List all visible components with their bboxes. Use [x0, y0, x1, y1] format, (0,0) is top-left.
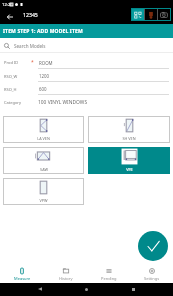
staticText: 12345	[23, 11, 38, 18]
staticText: Search Models	[14, 43, 46, 49]
button[interactable]: Back	[4, 11, 16, 23]
staticText: LA VEN	[37, 136, 50, 141]
staticText: RSO_W	[4, 74, 31, 79]
staticText: History	[59, 276, 73, 281]
button[interactable]: LA VEN	[3, 116, 84, 143]
button[interactable]: SH VEN	[88, 116, 170, 143]
staticText: ROOM	[39, 60, 53, 66]
button[interactable]: Alerts	[145, 9, 157, 20]
button[interactable]: Settings	[130, 266, 173, 283]
staticText: *	[31, 59, 34, 66]
button[interactable]: Measure	[0, 266, 44, 283]
staticText: VFE	[126, 167, 133, 172]
staticText: 1200	[39, 73, 50, 79]
button[interactable]: Camera	[158, 9, 170, 20]
button[interactable]: Back	[34, 283, 46, 295]
staticText: Settings	[144, 276, 160, 281]
staticText: ITEM STEP 1: ADD MODEL ITEM	[3, 28, 83, 35]
staticText: Prod ID	[4, 60, 31, 65]
button[interactable]: Recent apps	[127, 283, 139, 295]
staticText: Category	[4, 100, 38, 105]
staticText: SAW	[40, 167, 48, 172]
button[interactable]: History	[44, 266, 87, 283]
staticText: Pending	[101, 276, 117, 281]
staticText: 100 VINYL WINDOWS	[38, 99, 88, 106]
staticText: SH VEN	[122, 136, 136, 141]
staticText: VPW	[39, 198, 48, 203]
staticText: 12:26	[2, 2, 13, 8]
button[interactable]: Scan barcode	[132, 9, 144, 20]
button[interactable]: VFE	[88, 147, 170, 174]
staticText: 600	[39, 86, 47, 92]
button[interactable]: SAW	[3, 147, 84, 174]
button[interactable]: Confirm	[138, 231, 168, 261]
button[interactable]: Home	[80, 283, 92, 295]
button[interactable]: Pending	[87, 266, 130, 283]
button[interactable]: VPW	[3, 178, 84, 205]
staticText: Measure	[14, 276, 31, 281]
staticText: RSO_H	[4, 87, 31, 92]
